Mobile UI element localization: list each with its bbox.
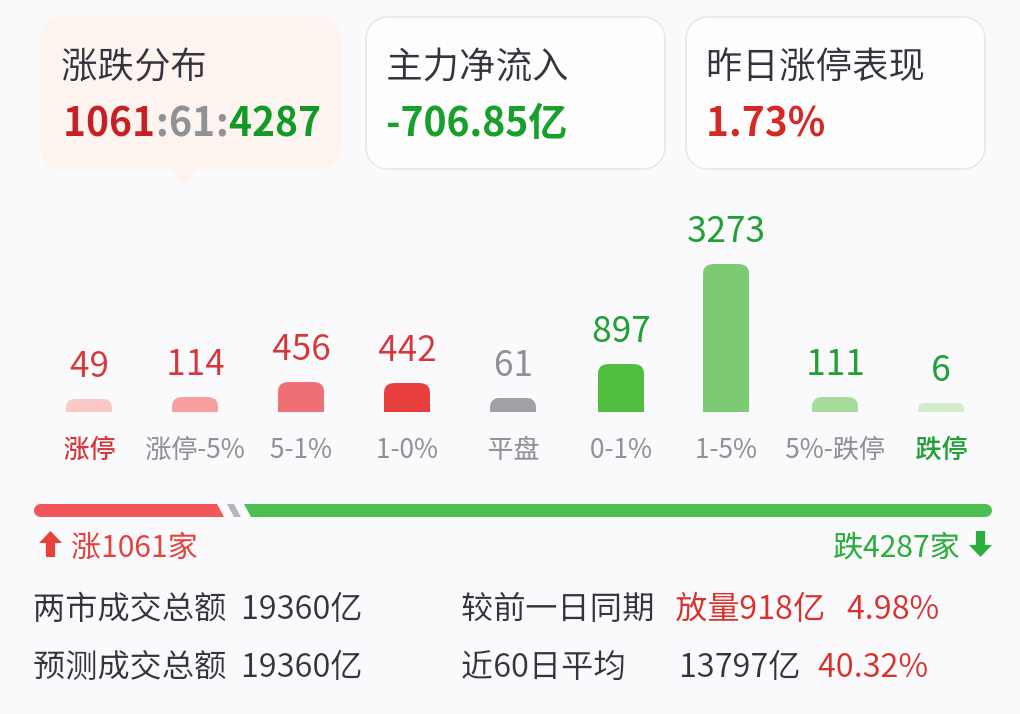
staticText: 114: [166, 334, 225, 385]
staticText: 昨日涨停表现: [706, 36, 925, 89]
staticText: 19360亿: [241, 582, 363, 629]
staticText: 61: [494, 335, 533, 386]
staticText: :: [216, 91, 229, 147]
staticText: 两市成交总额: [33, 582, 227, 629]
staticText: 跌停: [915, 428, 968, 466]
button[interactable]: 主力净流入: [365, 16, 666, 170]
staticText: :: [156, 91, 169, 147]
staticText: 5%-跌停: [785, 428, 885, 466]
staticText: 1.73%: [706, 91, 826, 147]
staticText: 49: [70, 336, 109, 387]
button[interactable]: 涨1061家: [39, 522, 198, 565]
staticText: 平盘: [487, 428, 540, 466]
staticText: 442: [378, 320, 437, 371]
staticText: 5-1%: [270, 428, 332, 466]
button[interactable]: 涨跌分布: [40, 16, 341, 170]
staticText: 13797亿: [679, 640, 801, 687]
staticText: 0-1%: [590, 428, 652, 466]
staticText: 456: [272, 319, 331, 370]
button[interactable]: 昨日涨停表现: [685, 16, 986, 170]
staticText: 6: [931, 340, 951, 391]
staticText: 预测成交总额: [33, 640, 227, 687]
staticText: 1061: [63, 91, 156, 147]
staticText: 19360亿: [241, 640, 363, 687]
staticText: 4287: [229, 91, 322, 147]
staticText: 放量918亿: [675, 582, 826, 629]
button[interactable]: 跌4287家: [833, 522, 992, 565]
staticText: 涨1061家: [71, 522, 198, 565]
staticText: 涨跌分布: [61, 36, 207, 89]
staticText: 近60日平均: [461, 640, 626, 687]
staticText: 较前一日同期: [461, 582, 655, 629]
staticText: 跌4287家: [833, 522, 960, 565]
staticText: -706.85亿: [386, 91, 568, 147]
staticText: 111: [806, 334, 865, 385]
staticText: 40.32%: [818, 640, 929, 687]
staticText: 涨停: [63, 428, 116, 466]
staticText: 1-5%: [695, 428, 757, 466]
staticText: 主力净流入: [386, 36, 569, 89]
staticText: 1-0%: [376, 428, 438, 466]
staticText: 3273: [687, 201, 765, 252]
staticText: 涨停-5%: [145, 428, 245, 466]
staticText: 61: [169, 91, 216, 147]
staticText: 4.98%: [847, 582, 940, 629]
staticText: 897: [592, 301, 651, 352]
